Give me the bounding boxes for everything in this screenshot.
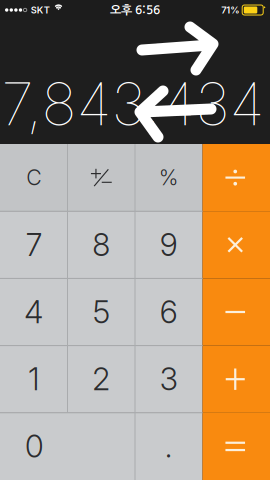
button[interactable]: Toggle sign <box>67 144 135 211</box>
button[interactable]: 4 <box>0 278 67 346</box>
button[interactable]: . <box>135 413 202 480</box>
button[interactable]: 1 <box>0 346 67 413</box>
button[interactable]: 2 <box>67 346 135 413</box>
button[interactable]: 8 <box>67 211 135 278</box>
button[interactable]: 9 <box>135 211 202 278</box>
staticText: 6 <box>160 293 178 330</box>
button[interactable]: Equals <box>202 413 270 480</box>
staticText: 7 <box>26 226 42 263</box>
staticText: 5 <box>93 293 110 330</box>
staticText: % <box>159 165 179 190</box>
staticText: 4 <box>24 293 43 330</box>
staticText: C <box>26 165 41 190</box>
button[interactable]: Subtract <box>202 278 270 346</box>
staticText: 9 <box>160 226 178 263</box>
staticText: 7,843,434 <box>1 68 264 139</box>
staticText: 2 <box>92 361 110 398</box>
button[interactable]: 3 <box>135 346 202 413</box>
button[interactable]: 5 <box>67 278 135 346</box>
button[interactable]: % <box>135 144 202 211</box>
button[interactable]: 6 <box>135 278 202 346</box>
button[interactable]: Multiply <box>202 211 270 278</box>
button[interactable]: Add <box>202 346 270 413</box>
staticText: SKT <box>31 4 50 16</box>
staticText: 71% <box>221 4 239 16</box>
staticText: 8 <box>92 226 110 263</box>
staticText: 1 <box>28 361 39 398</box>
staticText: . <box>165 428 173 465</box>
button[interactable]: 7 <box>0 211 67 278</box>
staticText: 0 <box>25 428 44 465</box>
button[interactable]: C <box>0 144 67 211</box>
staticText: 3 <box>160 361 178 398</box>
staticText: 오후 6:56 <box>110 4 160 16</box>
button[interactable]: 0 <box>0 413 135 480</box>
button[interactable]: Divide <box>202 144 270 211</box>
